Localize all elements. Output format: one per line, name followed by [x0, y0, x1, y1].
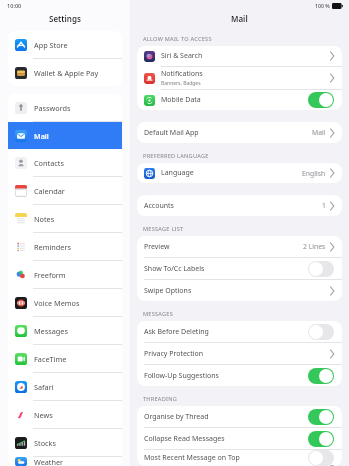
button[interactable]: News — [8, 401, 122, 428]
button[interactable]: Mobile Data — [137, 90, 342, 110]
staticText: Freeform — [34, 270, 66, 280]
staticText: Privacy Protection — [144, 349, 204, 359]
staticText: FaceTime — [34, 354, 67, 364]
staticText: Collapse Read Messages — [144, 434, 225, 444]
staticText: Wallet & Apple Pay — [34, 68, 99, 78]
staticText: MESSAGE LIST — [143, 225, 184, 233]
staticText: Accounts — [144, 201, 174, 211]
staticText: App Store — [34, 40, 68, 50]
staticText: News — [34, 410, 53, 420]
staticText: Mail — [34, 131, 49, 141]
button[interactable]: Language — [137, 163, 342, 183]
button[interactable]: Swipe Options — [137, 280, 342, 301]
staticText: Swipe Options — [144, 286, 192, 296]
button[interactable] — [308, 261, 334, 277]
staticText: Mail — [231, 13, 248, 24]
staticText: Calendar — [34, 186, 65, 196]
button[interactable]: Weather — [8, 457, 122, 466]
button[interactable]: Follow-Up Suggestions — [137, 365, 342, 386]
staticText: Organise by Thread — [144, 412, 209, 422]
button[interactable]: Preview — [137, 236, 342, 257]
staticText: Safari — [34, 382, 54, 392]
button[interactable] — [308, 450, 334, 466]
button[interactable]: Default Mail App — [137, 122, 342, 143]
staticText: THREADING — [143, 395, 177, 403]
button[interactable]: Reminders — [8, 233, 122, 260]
button[interactable]: Stocks — [8, 429, 122, 456]
button[interactable] — [308, 324, 334, 340]
button[interactable]: Mail — [8, 122, 122, 149]
button[interactable]: Messages — [8, 317, 122, 344]
staticText: Ask Before Deleting — [144, 327, 209, 337]
staticText: Contacts — [34, 158, 64, 168]
staticText: 100 % — [315, 2, 330, 9]
button[interactable]: Wallet & Apple Pay — [8, 59, 122, 86]
button[interactable]: App Store — [8, 31, 122, 58]
button[interactable]: Safari — [8, 373, 122, 400]
button[interactable]: Privacy Protection — [137, 343, 342, 364]
staticText: Mail — [312, 128, 326, 137]
staticText: Banners, Badges — [161, 80, 201, 87]
button[interactable]: Organise by Thread — [137, 406, 342, 427]
staticText: 10:00 — [7, 2, 22, 10]
staticText: Voice Memos — [34, 298, 80, 308]
button[interactable]: FaceTime — [8, 345, 122, 372]
staticText: Settings — [49, 13, 81, 24]
staticText: Weather — [34, 457, 64, 466]
staticText: 1 — [322, 201, 326, 210]
button[interactable]: Most Recent Message on Top — [137, 450, 342, 466]
button[interactable] — [308, 368, 334, 384]
staticText: Passwords — [34, 103, 71, 113]
staticText: Preview — [144, 242, 170, 252]
button[interactable]: Calendar — [8, 177, 122, 204]
button[interactable]: Notifications — [137, 67, 342, 89]
staticText: Messages — [34, 326, 68, 336]
staticText: Notifications — [161, 69, 203, 79]
staticText: Language — [161, 168, 194, 178]
button[interactable] — [308, 92, 334, 108]
button[interactable]: Accounts — [137, 195, 342, 216]
staticText: PREFERRED LANGUAGE — [143, 152, 209, 160]
staticText: Siri & Search — [161, 51, 203, 61]
button[interactable] — [308, 431, 334, 447]
button[interactable] — [308, 409, 334, 425]
button[interactable]: Collapse Read Messages — [137, 428, 342, 449]
button[interactable]: Passwords — [8, 94, 122, 121]
staticText: 2 Lines — [303, 242, 326, 251]
staticText: Stocks — [34, 438, 56, 448]
staticText: Notes — [34, 214, 55, 224]
button[interactable]: Freeform — [8, 261, 122, 288]
staticText: English — [302, 169, 326, 178]
button[interactable]: Show To/Cc Labels — [137, 258, 342, 279]
button[interactable]: Notes — [8, 205, 122, 232]
staticText: Default Mail App — [144, 128, 199, 138]
button[interactable]: Voice Memos — [8, 289, 122, 316]
staticText: Show To/Cc Labels — [144, 264, 205, 274]
staticText: Most Recent Message on Top — [144, 453, 240, 463]
button[interactable]: Contacts — [8, 149, 122, 176]
staticText: Follow-Up Suggestions — [144, 371, 219, 381]
staticText: Mobile Data — [161, 95, 201, 105]
staticText: Reminders — [34, 242, 71, 252]
staticText: MESSAGES — [143, 310, 174, 318]
button[interactable]: Siri & Search — [137, 46, 342, 66]
staticText: ALLOW MAIL TO ACCESS — [143, 35, 212, 43]
button[interactable]: Ask Before Deleting — [137, 321, 342, 342]
